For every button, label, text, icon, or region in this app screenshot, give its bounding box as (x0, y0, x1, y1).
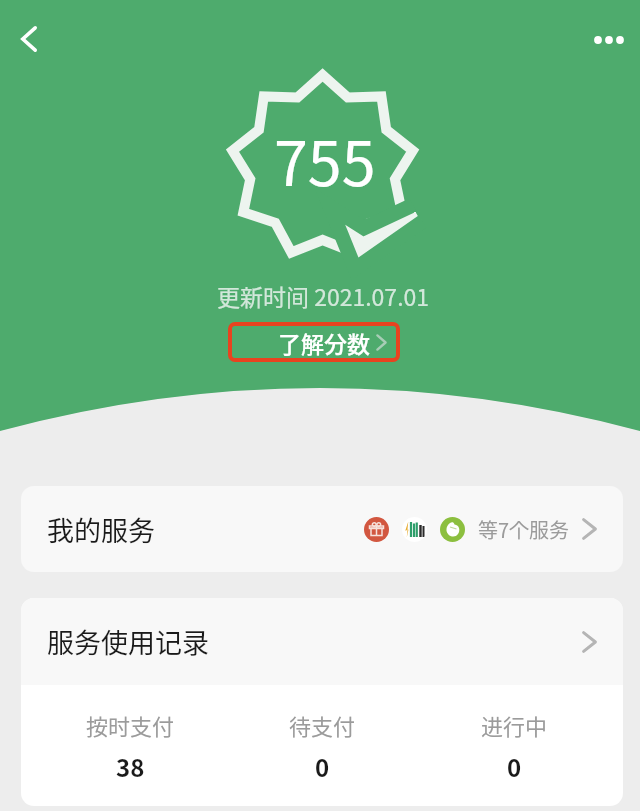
button[interactable]: 按时支付 (34, 685, 226, 806)
staticText: 更新时间 2021.07.01 (217, 279, 430, 312)
button[interactable]: Back (2, 12, 56, 66)
staticText: 0 (507, 749, 522, 784)
staticText: 服务使用记录 (47, 622, 209, 661)
button[interactable]: More options (582, 13, 636, 67)
staticText: 755 (274, 115, 376, 203)
button[interactable]: 了解分数 (228, 322, 400, 362)
staticText: 了解分数 (278, 326, 370, 359)
button[interactable]: 进行中 (418, 685, 610, 806)
staticText: 待支付 (289, 709, 356, 741)
staticText: 38 (116, 749, 145, 784)
button[interactable]: 我的服务 (21, 486, 623, 572)
staticText: 0 (315, 749, 330, 784)
staticText: 等7个服务 (478, 515, 570, 544)
staticText: 按时支付 (86, 709, 175, 741)
staticText: 进行中 (481, 709, 548, 741)
staticText: 我的服务 (47, 510, 155, 549)
button[interactable]: 服务使用记录 (21, 598, 623, 685)
button[interactable]: 待支付 (226, 685, 418, 806)
